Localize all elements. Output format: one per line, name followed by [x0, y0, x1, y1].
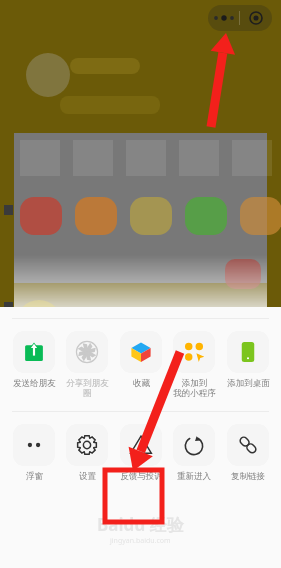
- button[interactable]: 复制链接: [223, 424, 273, 482]
- button[interactable]: Close: [240, 5, 272, 31]
- staticText: 反馈与投诉: [120, 471, 163, 482]
- button[interactable]: 收藏: [116, 331, 166, 389]
- staticText: 收藏: [133, 378, 150, 389]
- button[interactable]: 重新进入: [169, 424, 219, 482]
- button[interactable]: 设置: [62, 424, 112, 482]
- staticText: 复制链接: [231, 471, 265, 482]
- button[interactable]: 发送给朋友: [9, 331, 59, 389]
- button[interactable]: 添加到 我的小程序: [169, 331, 219, 399]
- button[interactable]: 浮窗: [9, 424, 59, 482]
- staticText: 添加到 我的小程序: [173, 378, 216, 399]
- button[interactable]: 添加到桌面: [223, 331, 273, 389]
- staticText: 发送给朋友: [13, 378, 56, 389]
- staticText: 重新进入: [177, 471, 211, 482]
- staticText: 浮窗: [26, 471, 43, 482]
- staticText: jingyan.baidu.com: [110, 536, 171, 546]
- staticText: 分享到朋友 圈: [66, 378, 109, 399]
- staticText: 设置: [79, 471, 96, 482]
- button[interactable]: 分享到朋友 圈: [62, 331, 112, 399]
- button[interactable]: 反馈与投诉: [116, 424, 166, 482]
- staticText: Baidu 经验: [97, 513, 184, 536]
- button[interactable]: More: [208, 5, 239, 31]
- staticText: 添加到桌面: [227, 378, 270, 389]
